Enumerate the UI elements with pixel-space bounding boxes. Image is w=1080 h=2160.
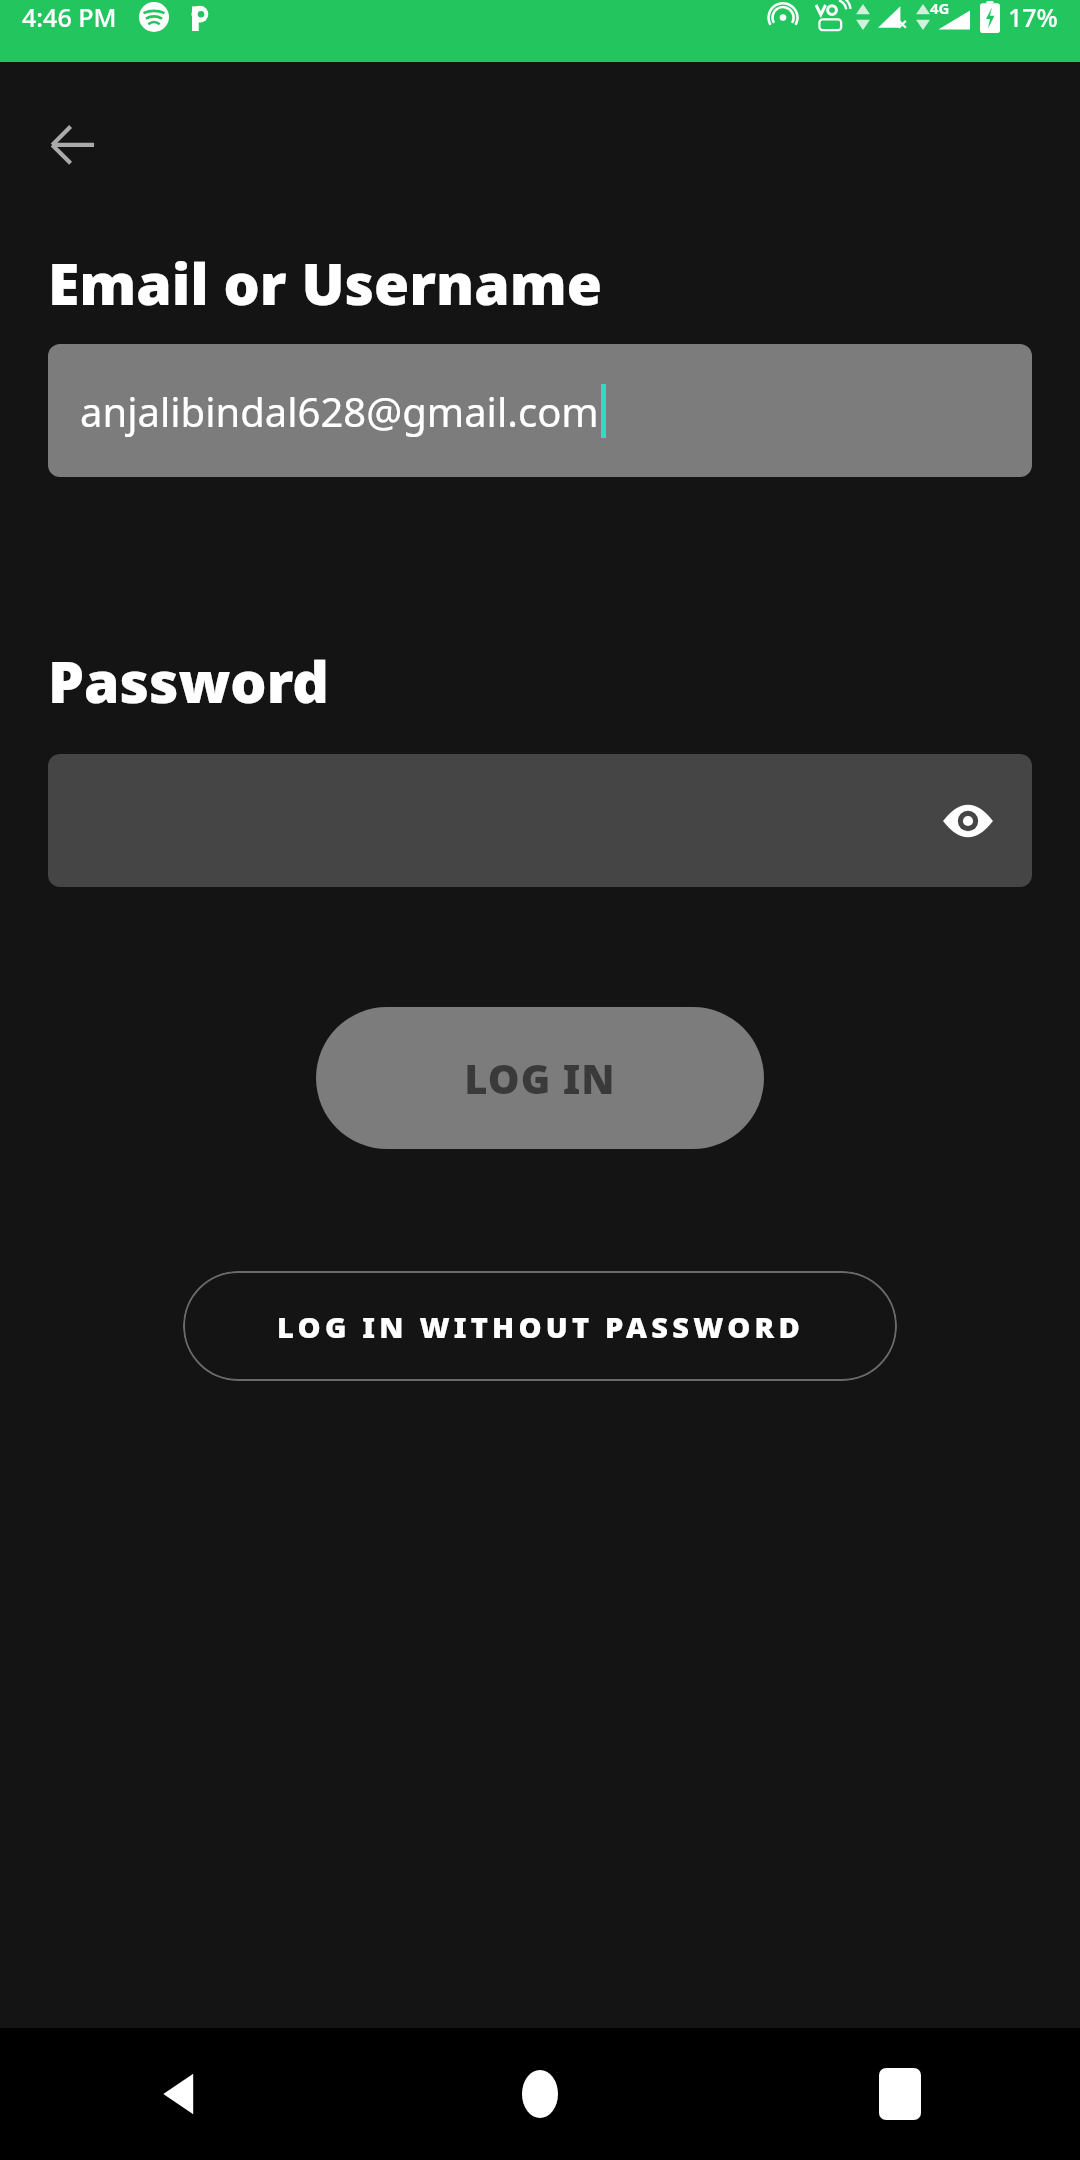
button[interactable]: Back: [0, 2072, 360, 2116]
staticText: Email or Username: [48, 244, 602, 322]
staticText: 4G: [930, 0, 950, 18]
button[interactable]: Home: [360, 2070, 720, 2118]
button[interactable]: anjalibindal628@gmail.com: [48, 344, 1032, 477]
staticText: 4:46 PM: [22, 0, 117, 34]
staticText: LOG IN: [464, 1051, 616, 1105]
staticText: 17%: [1008, 0, 1058, 34]
button[interactable]: Show password: [48, 754, 1032, 887]
button[interactable]: Show password: [930, 783, 1006, 859]
staticText: anjalibindal628@gmail.com: [80, 384, 599, 438]
button[interactable]: LOG IN WITHOUT PASSWORD: [183, 1271, 897, 1381]
staticText: LOG IN WITHOUT PASSWORD: [277, 1307, 804, 1346]
staticText: Password: [48, 642, 329, 720]
button[interactable]: LOG IN: [316, 1007, 764, 1149]
button[interactable]: Recent apps: [720, 2068, 1080, 2120]
button[interactable]: Back: [34, 106, 110, 182]
